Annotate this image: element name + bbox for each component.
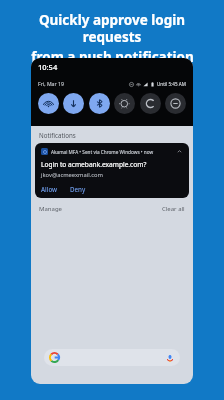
button[interactable]: Battery saver: [165, 93, 186, 114]
button[interactable]: Search: [44, 349, 180, 366]
button[interactable]: Collapse: [176, 148, 183, 155]
button[interactable]: Mobile data: [63, 93, 84, 114]
button[interactable]: Allow: [41, 185, 62, 193]
button[interactable]: Deny: [70, 185, 90, 193]
button[interactable]: Do not disturb: [140, 93, 161, 114]
staticText: from a push notification: [31, 48, 194, 66]
staticText: Quickly approve login requests: [10, 11, 214, 46]
staticText: Until 5:45 AM: [157, 81, 186, 87]
staticText: Login to acmebank.example.com?: [41, 160, 147, 169]
button[interactable]: Manage: [39, 205, 62, 213]
button[interactable]: Bluetooth: [89, 93, 110, 114]
button[interactable]: Akamai MFA • Sent via Chrome Windows • n…: [35, 143, 189, 198]
button[interactable]: Flashlight: [114, 93, 135, 114]
button[interactable]: Wi-Fi: [38, 93, 59, 114]
staticText: Notifications: [39, 131, 76, 139]
button[interactable]: Clear all: [162, 205, 185, 213]
staticText: jkov@acmeexmail.com: [41, 171, 104, 179]
staticText: Akamai MFA • Sent via Chrome Windows • n…: [51, 149, 154, 155]
staticText: 10:54: [38, 62, 58, 72]
staticText: Fri, Mar 19: [38, 80, 64, 87]
